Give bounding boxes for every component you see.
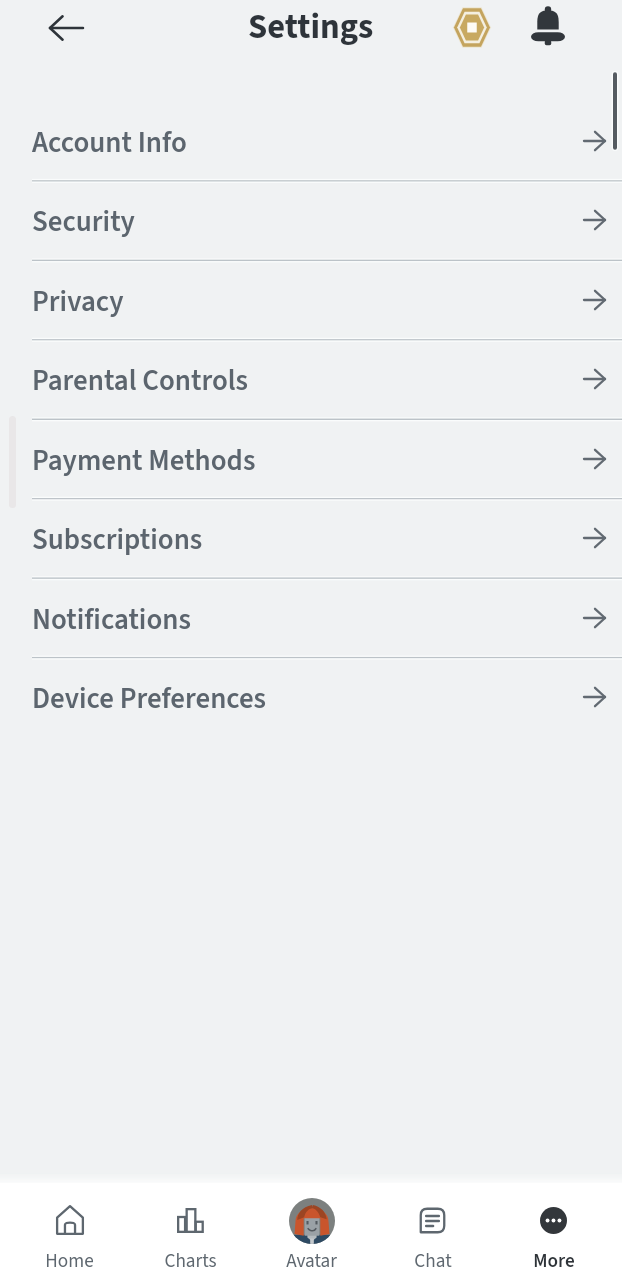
button[interactable]: Notifications	[0, 578, 622, 657]
staticText: Settings	[248, 3, 374, 52]
button[interactable]: More	[493, 1183, 614, 1280]
button[interactable]: Payment Methods	[0, 419, 622, 498]
staticText: Charts	[164, 1247, 217, 1274]
staticText: Avatar	[286, 1247, 337, 1274]
button[interactable]: Device Preferences	[0, 657, 622, 736]
staticText: Chat	[414, 1247, 452, 1274]
button[interactable]: Account Info	[0, 101, 622, 180]
button[interactable]: Subscriptions	[0, 498, 622, 577]
button[interactable]: Privacy	[0, 260, 622, 339]
button[interactable]: Notifications	[520, 0, 576, 54]
staticText: Security	[32, 201, 135, 242]
button[interactable]: Security	[0, 180, 622, 259]
staticText: Device Preferences	[32, 678, 267, 719]
button[interactable]: Chat	[372, 1183, 493, 1280]
staticText: Home	[45, 1247, 94, 1274]
button[interactable]: Avatar	[251, 1183, 372, 1280]
staticText: Parental Controls	[32, 360, 249, 401]
button[interactable]: Home	[9, 1183, 130, 1280]
staticText: Privacy	[32, 281, 124, 322]
button[interactable]: Back	[38, 0, 94, 56]
staticText: More	[533, 1247, 575, 1274]
button[interactable]: Robux	[444, 0, 500, 55]
staticText: Account Info	[32, 122, 187, 163]
button[interactable]: Parental Controls	[0, 339, 622, 418]
staticText: Notifications	[32, 599, 191, 640]
staticText: Subscriptions	[32, 519, 203, 560]
staticText: Payment Methods	[32, 440, 256, 481]
button[interactable]: Charts	[130, 1183, 251, 1280]
